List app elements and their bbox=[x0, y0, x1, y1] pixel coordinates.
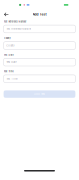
staticText: Add Test bbox=[32, 12, 46, 16]
button[interactable]: Test Date bbox=[4, 58, 75, 66]
staticText: Test Reference Number bbox=[6, 27, 31, 30]
button[interactable]: Test Time bbox=[4, 75, 75, 83]
staticText: Test Reference Number bbox=[4, 20, 27, 23]
staticText: Test Time bbox=[4, 70, 14, 73]
staticText: Test Date bbox=[4, 54, 14, 56]
button[interactable]: Back bbox=[0, 10, 12, 18]
button[interactable]: Add Test bbox=[4, 90, 75, 98]
staticText: Test Date bbox=[6, 61, 16, 64]
button[interactable]: Test Reference Number bbox=[4, 25, 75, 33]
staticText: County bbox=[4, 37, 11, 40]
staticText: Test Time bbox=[6, 77, 17, 80]
button[interactable]: County bbox=[4, 42, 75, 49]
staticText: Add Test bbox=[34, 93, 45, 96]
staticText: County bbox=[6, 44, 14, 47]
